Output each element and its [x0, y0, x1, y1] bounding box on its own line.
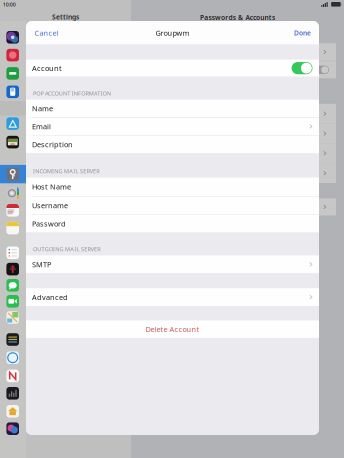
button[interactable]: Name — [26, 100, 319, 117]
staticText: Name — [32, 103, 53, 113]
button[interactable]: Host Name — [26, 177, 319, 196]
button[interactable]: Done — [294, 21, 311, 45]
staticText: Delete Account — [145, 324, 199, 334]
button[interactable]: Email — [26, 118, 319, 135]
staticText: Account — [32, 63, 62, 73]
staticText: OUTGOING MAIL SERVER — [33, 245, 100, 253]
staticText: Done — [294, 28, 311, 37]
button[interactable]: Password — [26, 215, 319, 232]
staticText: POP ACCOUNT INFORMATION — [33, 89, 111, 97]
staticText: Groupwm — [155, 28, 189, 38]
staticText: Description — [32, 139, 73, 149]
button[interactable]: Advanced — [26, 288, 319, 306]
staticText: 10:00 — [3, 1, 16, 8]
staticText: Settings — [52, 13, 79, 21]
button[interactable]: Description — [26, 136, 319, 153]
staticText: Username — [32, 200, 68, 210]
staticText: Advanced — [32, 292, 68, 302]
staticText: Email — [32, 121, 51, 131]
button[interactable]: Account — [26, 60, 319, 77]
staticText: Host Name — [32, 182, 71, 192]
button[interactable]: SMTP — [26, 255, 319, 273]
button[interactable]: Username — [26, 197, 319, 214]
staticText: Password — [32, 219, 66, 229]
button[interactable]: Delete Account — [26, 320, 319, 338]
staticText: INCOMING MAIL SERVER — [33, 167, 99, 175]
staticText: Passwords & Accounts — [200, 13, 275, 22]
staticText: SMTP — [32, 259, 51, 269]
staticText: Cancel — [34, 28, 58, 38]
button[interactable]: Cancel — [34, 21, 58, 45]
